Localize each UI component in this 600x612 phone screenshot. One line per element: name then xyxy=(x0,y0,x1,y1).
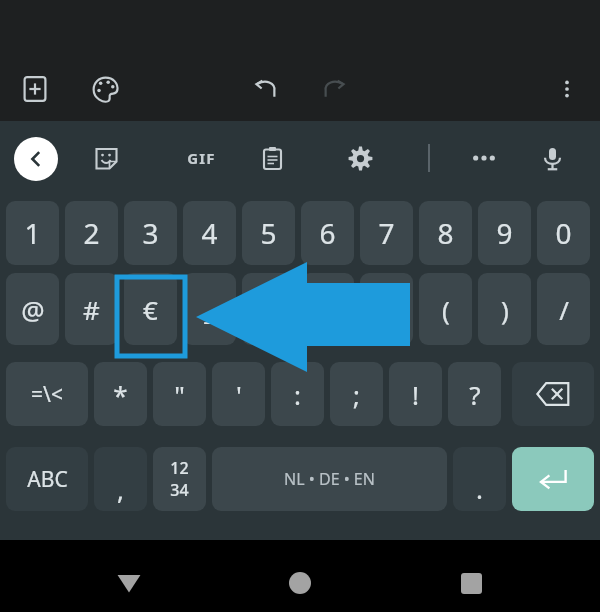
button[interactable]: Voice input xyxy=(535,141,569,175)
staticText: ABC xyxy=(27,465,68,494)
staticText: 12 xyxy=(170,457,189,479)
staticText: / xyxy=(559,292,569,327)
button[interactable]: 5 xyxy=(242,201,295,265)
button[interactable]: Home xyxy=(276,559,324,607)
button[interactable]: - xyxy=(301,273,354,345)
button[interactable]: =\< xyxy=(6,362,88,426)
button[interactable]: NL • DE • EN xyxy=(212,447,447,511)
button[interactable]: @ xyxy=(6,273,59,345)
staticText: . xyxy=(476,471,483,506)
button[interactable]: ; xyxy=(330,362,383,426)
button[interactable]: Clipboard xyxy=(255,141,289,175)
button[interactable]: € xyxy=(124,273,177,345)
button[interactable]: Backspace xyxy=(512,362,594,426)
button[interactable]: 8 xyxy=(419,201,472,265)
button[interactable]: + xyxy=(360,273,413,345)
staticText: 0 xyxy=(555,214,572,252)
button[interactable]: Recent apps xyxy=(447,559,495,607)
staticText: 4 xyxy=(201,214,218,252)
button[interactable]: Redo xyxy=(318,72,352,106)
staticText: 6 xyxy=(319,214,336,252)
staticText: 8 xyxy=(437,214,454,252)
staticText: * xyxy=(113,377,128,412)
button[interactable]: , xyxy=(94,447,147,511)
button[interactable]: More xyxy=(464,141,504,175)
staticText: =\< xyxy=(31,380,63,409)
button[interactable]: 1 xyxy=(6,201,59,265)
button[interactable]: 12 xyxy=(153,447,206,511)
button[interactable]: ! xyxy=(389,362,442,426)
staticText: ' xyxy=(236,377,242,412)
button[interactable]: ' xyxy=(212,362,265,426)
button[interactable]: ? xyxy=(448,362,501,426)
button[interactable]: Theme xyxy=(88,72,122,106)
button[interactable]: Stickers xyxy=(89,141,123,175)
button[interactable]: & xyxy=(242,273,295,345)
staticText: # xyxy=(83,292,100,327)
button[interactable]: 3 xyxy=(124,201,177,265)
staticText: NL • DE • EN xyxy=(284,468,375,490)
staticText: 7 xyxy=(378,214,395,252)
staticText: 34 xyxy=(170,479,189,501)
button[interactable]: 4 xyxy=(183,201,236,265)
staticText: € xyxy=(143,292,158,327)
button[interactable]: " xyxy=(153,362,206,426)
staticText: ? xyxy=(469,377,481,412)
button[interactable]: _ xyxy=(183,273,236,345)
staticText: ( xyxy=(442,292,450,327)
button[interactable]: GIF xyxy=(178,141,224,175)
button[interactable]: # xyxy=(65,273,118,345)
staticText: 9 xyxy=(496,214,513,252)
staticText: : xyxy=(294,377,301,412)
button[interactable]: . xyxy=(453,447,506,511)
button[interactable]: / xyxy=(537,273,590,345)
button[interactable]: Back xyxy=(14,137,58,181)
button[interactable]: 6 xyxy=(301,201,354,265)
button[interactable]: 2 xyxy=(65,201,118,265)
staticText: 3 xyxy=(142,214,159,252)
staticText: @ xyxy=(21,292,45,327)
button[interactable]: : xyxy=(271,362,324,426)
button[interactable]: ABC xyxy=(6,447,88,511)
staticText: " xyxy=(174,377,185,412)
button[interactable]: 9 xyxy=(478,201,531,265)
button[interactable]: Insert xyxy=(18,72,52,106)
staticText: 5 xyxy=(260,214,277,252)
staticText: GIF xyxy=(187,148,216,168)
button[interactable]: Back xyxy=(105,559,153,607)
button[interactable]: More options xyxy=(550,72,584,106)
staticText: ! xyxy=(412,377,419,412)
staticText: _ xyxy=(204,292,216,327)
staticText: ) xyxy=(501,292,509,327)
button[interactable]: 0 xyxy=(537,201,590,265)
staticText: 1 xyxy=(24,214,41,252)
staticText: 2 xyxy=(83,214,100,252)
button[interactable]: ) xyxy=(478,273,531,345)
button[interactable]: Enter xyxy=(512,447,594,511)
staticText: ; xyxy=(353,377,360,412)
button[interactable]: Undo xyxy=(248,72,282,106)
button[interactable]: Settings xyxy=(343,141,377,175)
button[interactable]: 7 xyxy=(360,201,413,265)
staticText: , xyxy=(117,472,124,507)
button[interactable]: * xyxy=(94,362,147,426)
button[interactable]: ( xyxy=(419,273,472,345)
